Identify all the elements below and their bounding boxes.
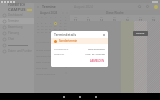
staticText: Termine: [42, 4, 56, 9]
staticText: Zwei Stunde: [36, 60, 50, 63]
button[interactable]: Dashboard: [0, 12, 34, 18]
button[interactable]: Termine: [0, 18, 34, 24]
staticText: 16: [126, 19, 130, 21]
staticText: Diese Woche: [106, 11, 124, 15]
staticText: Kurz Infos: [36, 66, 48, 69]
staticText: Fr: [127, 16, 129, 19]
button[interactable]: Benachrichtigungen: [146, 5, 149, 8]
button[interactable]: Daten und Punkte: [0, 48, 34, 54]
staticText: CAMPUS: [8, 7, 26, 11]
staticText: Mechanik Übung: [36, 54, 56, 57]
staticText: Sa: [139, 16, 142, 19]
staticText: 14: [100, 19, 104, 21]
staticText: Seminar: [136, 32, 145, 35]
button[interactable]: [0, 42, 34, 48]
staticText: Mo: [74, 16, 78, 19]
staticText: Sondertermin: [59, 39, 78, 43]
staticText: Daten und Punkte: [8, 49, 32, 53]
staticText: Planung: [8, 31, 19, 35]
button[interactable]: ABMELDEN: [89, 58, 105, 64]
staticText: Chat: [8, 37, 15, 41]
staticText: August 2024: [74, 5, 93, 9]
button[interactable]: Zurueck: [36, 5, 40, 9]
staticText: Di: [87, 16, 90, 19]
staticText: 15: [113, 19, 117, 21]
staticText: 17: [139, 19, 143, 21]
staticText: 23: [59, 28, 62, 31]
staticText: Referent: [54, 52, 65, 55]
staticText: 20: [45, 28, 48, 31]
staticText: Physik Vorlesung: [36, 72, 56, 75]
staticText: Fachbereich: [54, 47, 69, 50]
staticText: Bewertung: [8, 25, 23, 29]
button[interactable]: Fr: [121, 15, 134, 93]
staticText: 6: [45, 22, 47, 25]
staticText: So: [152, 16, 155, 19]
button[interactable]: Bewertung: [0, 24, 34, 30]
staticText: Termine: [8, 19, 19, 23]
button[interactable]: Chat: [0, 36, 34, 42]
button[interactable]: Mo: [70, 15, 82, 93]
staticText: Mi: [100, 16, 103, 19]
staticText: 24: [64, 28, 67, 31]
staticText: 9: [60, 22, 62, 25]
button[interactable]: Profil: [154, 5, 158, 9]
staticText: POWERTECH: [8, 3, 26, 7]
button[interactable]: Mi: [95, 15, 108, 93]
button[interactable]: Sa: [134, 15, 147, 93]
staticText: 31: [64, 31, 67, 34]
staticText: 8: [55, 22, 57, 25]
staticText: 25: [37, 31, 40, 34]
staticText: 26: [41, 31, 44, 34]
staticText: 2: [60, 19, 62, 22]
staticText: Maschinenbau: [87, 47, 105, 50]
button[interactable]: Mechanik Übung: [34, 52, 70, 58]
staticText: 13: [87, 19, 91, 21]
button[interactable]: Seminar: [133, 31, 148, 36]
staticText: Termindetails: [54, 32, 77, 37]
staticText: 29: [54, 31, 57, 34]
staticText: 18: [152, 19, 156, 21]
button[interactable]: Planung: [0, 30, 34, 36]
staticText: 22: [54, 28, 57, 31]
staticText: 5: [41, 22, 43, 25]
button[interactable]: So: [147, 15, 160, 93]
staticText: ABMELDEN: [90, 59, 104, 63]
button[interactable]: Schliessen: [102, 33, 106, 37]
button[interactable]: Di: [82, 15, 95, 93]
button[interactable]: Mathe Klausur: [34, 46, 70, 52]
staticText: Do: [113, 16, 116, 19]
button[interactable]: Zwei Stunde: [34, 58, 70, 64]
staticText: 12: [74, 19, 78, 21]
button[interactable]: Kurz Infos: [34, 64, 70, 70]
staticText: Prof. Dr. Schmidt: [85, 52, 105, 55]
staticText: August 2024: [40, 11, 58, 15]
button[interactable]: Suche: [138, 5, 141, 8]
staticText: 27: [45, 31, 48, 34]
